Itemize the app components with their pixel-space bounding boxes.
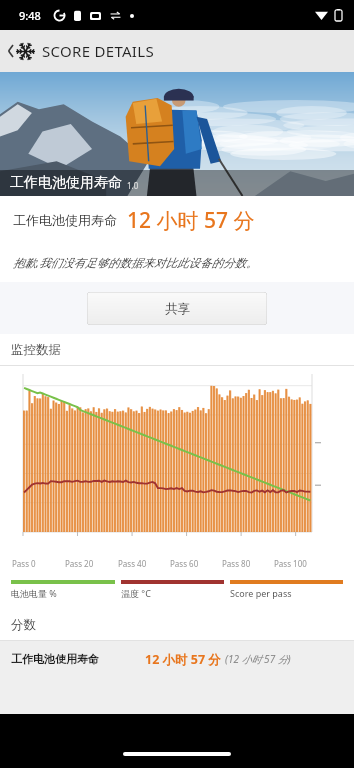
staticText: 工作电池使用寿命 [10, 174, 122, 192]
staticText: 1.0 [127, 180, 139, 191]
staticText: Pass 100 [274, 558, 307, 569]
staticText: Pass 0 [12, 558, 36, 569]
staticText: 9:48 [19, 8, 41, 23]
staticText: 12 小时 57 分 [127, 206, 255, 235]
staticText: Pass 80 [222, 558, 251, 569]
button[interactable]: 工作电池使用寿命 [0, 641, 354, 677]
staticText: 抱歉,我们没有足够的数据来对比此设备的分数。 [13, 255, 258, 271]
staticText: Pass 60 [170, 558, 199, 569]
staticText: Pass 40 [118, 558, 147, 569]
staticText: (12 小时 57 分) [225, 652, 291, 666]
staticText: Score per pass [230, 587, 292, 599]
staticText: 工作电池使用寿命 [11, 652, 99, 666]
staticText: 电池电量 % [11, 587, 57, 599]
staticText: 共享 [165, 301, 190, 317]
button[interactable]: Back [4, 41, 157, 61]
staticText: 温度 °C [121, 587, 151, 599]
staticText: SCORE DETAILS [42, 41, 154, 61]
staticText: Pass 20 [65, 558, 94, 569]
staticText: 工作电池使用寿命 [13, 212, 117, 228]
staticText: 12 小时 57 分 [145, 651, 221, 668]
staticText: 分数 [11, 617, 36, 633]
button[interactable]: 共享 [87, 292, 267, 325]
staticText: 监控数据 [11, 342, 61, 358]
